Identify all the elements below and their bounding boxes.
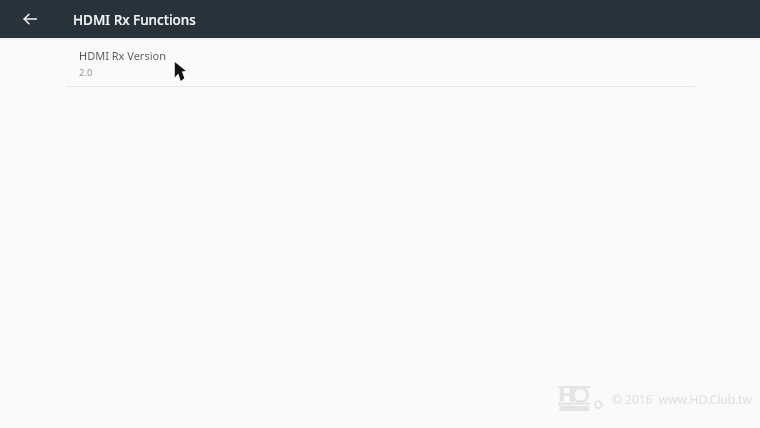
staticText: © 2016 www.HD.Club.tw xyxy=(611,391,752,407)
staticText: HDMI Rx Version xyxy=(79,48,166,63)
staticText: HDMI Rx Functions xyxy=(73,11,196,29)
staticText: 2.0 xyxy=(79,66,93,79)
button[interactable]: HDMI Rx Version xyxy=(66,40,695,86)
button[interactable]: Back xyxy=(12,1,48,37)
